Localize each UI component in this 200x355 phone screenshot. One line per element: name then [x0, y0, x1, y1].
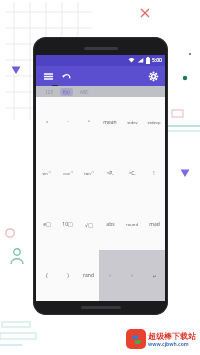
- staticText: ‹: [109, 272, 111, 279]
- staticText: ): [67, 272, 69, 279]
- button[interactable]: 123: [42, 88, 56, 96]
- staticText: ↵: [152, 273, 157, 279]
- staticText: (: [46, 272, 48, 279]
- button[interactable]: ⁿCᵣ: [121, 148, 143, 199]
- staticText: abs: [106, 221, 115, 228]
- button[interactable]: mad: [143, 199, 165, 250]
- staticText: ˣ: [46, 119, 48, 126]
- button[interactable]: ABC: [77, 88, 92, 96]
- staticText: √□: [85, 222, 93, 228]
- staticText: cos⁻¹: [63, 171, 73, 177]
- button[interactable]: sin⁻¹: [36, 148, 57, 199]
- staticText: rand: [83, 272, 94, 279]
- button[interactable]: round: [121, 199, 143, 250]
- button[interactable]: cos⁻¹: [57, 148, 78, 199]
- staticText: !: [153, 170, 155, 177]
- button[interactable]: ↵: [143, 250, 165, 301]
- button[interactable]: e□: [36, 199, 57, 250]
- button[interactable]: stdev: [121, 97, 143, 148]
- button[interactable]: √□: [78, 199, 99, 250]
- staticText: e□: [43, 221, 51, 228]
- staticText: mad: [149, 221, 160, 228]
- staticText: ⁻: [67, 119, 69, 126]
- staticText: ABC: [80, 89, 89, 95]
- staticText: f(x): [63, 89, 70, 95]
- button[interactable]: 10□: [57, 199, 78, 250]
- staticText: sin⁻¹: [42, 171, 51, 177]
- button[interactable]: f(x): [60, 88, 73, 96]
- button[interactable]: (: [36, 250, 57, 301]
- button[interactable]: Settings: [146, 69, 160, 83]
- staticText: ›: [131, 272, 133, 279]
- staticText: round: [126, 222, 138, 228]
- button[interactable]: Menu: [41, 69, 55, 83]
- button[interactable]: rand: [78, 250, 99, 301]
- staticText: www.cjbwh.com: [148, 341, 189, 348]
- staticText: mean: [103, 119, 117, 126]
- staticText: 5:00: [152, 57, 162, 64]
- button[interactable]: mean: [99, 97, 121, 148]
- button[interactable]: tan⁻¹: [78, 148, 99, 199]
- button[interactable]: ⁿPᵣ: [99, 148, 121, 199]
- staticText: 10□: [62, 221, 73, 228]
- staticText: ⁿPᵣ: [107, 170, 114, 177]
- button[interactable]: ): [57, 250, 78, 301]
- button[interactable]: abs: [99, 199, 121, 250]
- staticText: stdevp: [147, 120, 161, 126]
- staticText: ²: [88, 119, 90, 126]
- staticText: 超级棒下载站: [148, 331, 196, 341]
- button[interactable]: Undo: [59, 69, 73, 83]
- staticText: tan⁻¹: [84, 171, 94, 177]
- button[interactable]: stdevp: [143, 97, 165, 148]
- staticText: 123: [45, 89, 53, 95]
- staticText: stdev: [127, 120, 138, 126]
- staticText: ⁿCᵣ: [129, 170, 136, 177]
